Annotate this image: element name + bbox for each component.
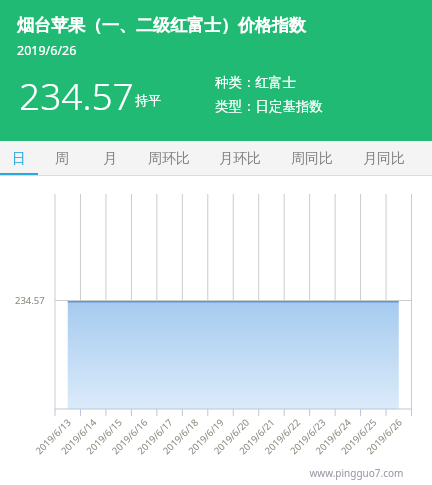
staticText: 日 [12,150,26,168]
staticText: 周环比 [148,150,190,168]
staticText: 种类：红富士 [215,74,296,91]
button[interactable]: 月环比 [204,141,276,176]
staticText: 2019/6/26 [17,42,77,59]
button[interactable]: 月同比 [348,141,420,176]
staticText: 月 [103,150,117,168]
button[interactable]: 周 [38,141,86,176]
staticText: 持平 [135,92,161,108]
staticText: 类型：日定基指数 [215,98,323,115]
staticText: 月环比 [219,150,261,168]
button[interactable]: 周同比 [276,141,348,176]
button[interactable]: 月 [86,141,134,176]
button[interactable]: 周环比 [134,141,204,176]
staticText: 周同比 [291,150,333,168]
staticText: 烟台苹果（一、二级红富士）价格指数 [17,15,306,36]
other: Price index chart [0,176,432,485]
staticText: 234.57 [19,70,134,120]
staticText: 周 [55,150,69,168]
staticText: 月同比 [363,150,405,168]
button[interactable]: 日 [0,141,38,176]
